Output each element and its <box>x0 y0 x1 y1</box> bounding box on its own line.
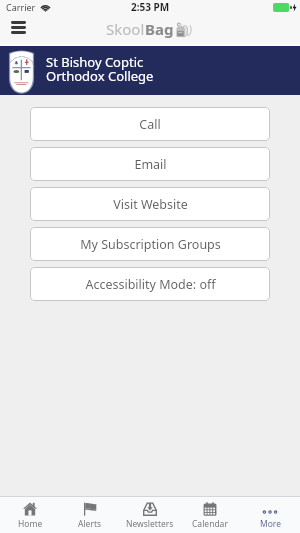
button[interactable]: Email <box>30 147 270 181</box>
staticText: 2:53 PM <box>131 0 170 14</box>
staticText: Call <box>139 116 161 133</box>
staticText: Alerts <box>78 518 102 530</box>
button[interactable]: Alerts <box>60 497 120 533</box>
staticText: My Subscription Groups <box>80 236 221 253</box>
staticText: Visit Website <box>113 196 188 213</box>
staticText: Accessibility Mode: off <box>85 276 216 293</box>
staticText: Newsletters <box>126 518 174 530</box>
staticText: Calendar <box>192 518 228 530</box>
staticText: Skool <box>106 19 145 39</box>
staticText: Home <box>18 518 43 530</box>
staticText: More <box>260 518 281 530</box>
staticText: Email <box>134 156 167 173</box>
button[interactable]: Calendar <box>180 497 240 533</box>
button[interactable]: Call <box>30 107 270 141</box>
button[interactable]: Home <box>0 497 60 533</box>
staticText: Carrier <box>6 1 36 13</box>
button[interactable]: Newsletters <box>120 497 180 533</box>
button[interactable]: My Subscription Groups <box>30 227 270 261</box>
button[interactable]: Visit Website <box>30 187 270 221</box>
button[interactable]: Menu <box>3 18 33 37</box>
staticText: St Bishoy Coptic Orthodox College <box>46 53 154 85</box>
button[interactable]: Accessibility Mode: off <box>30 267 270 301</box>
button[interactable]: More <box>240 497 300 533</box>
staticText: Bag <box>145 19 174 39</box>
